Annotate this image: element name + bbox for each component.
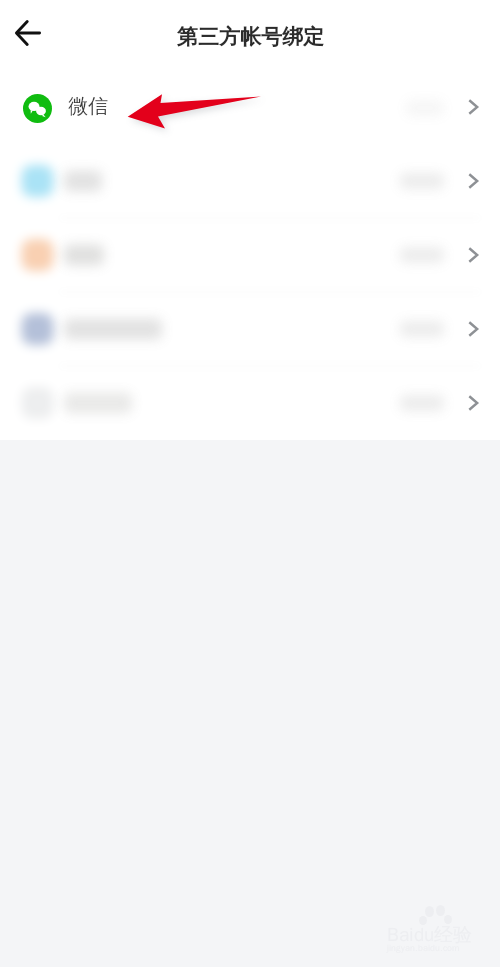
button[interactable] — [0, 145, 500, 219]
staticText: 第三方帐号绑定 — [177, 24, 324, 50]
staticText: 微信 — [68, 94, 108, 119]
button[interactable]: 微信 — [0, 71, 500, 145]
button[interactable]: Back — [9, 14, 46, 51]
button[interactable] — [0, 367, 500, 441]
button[interactable] — [0, 219, 500, 293]
button[interactable] — [0, 293, 500, 367]
